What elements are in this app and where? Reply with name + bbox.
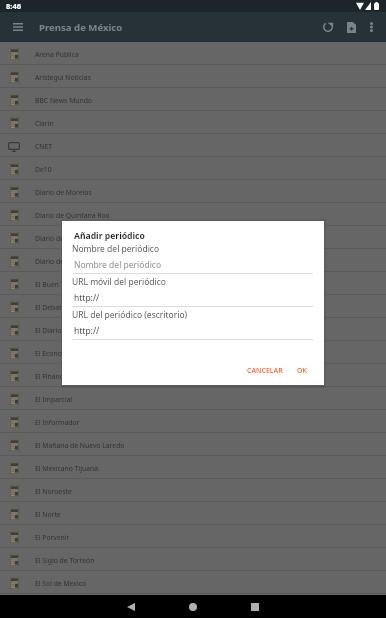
button[interactable]: OK xyxy=(290,362,314,380)
button[interactable]: El Noroeste xyxy=(0,479,386,502)
staticText: URL móvil del periódico xyxy=(72,276,166,288)
staticText: Diario de Xalapa xyxy=(35,234,88,243)
staticText: El Noroeste xyxy=(35,487,72,496)
staticText: Diario de Yucatán xyxy=(35,257,92,266)
button[interactable]: Diario de Xalapa xyxy=(0,226,386,249)
button[interactable]: Recent apps xyxy=(227,595,283,618)
staticText: El Siglo de Torreón xyxy=(35,556,95,565)
button[interactable]: El Imparcial xyxy=(0,387,386,410)
button[interactable]: El Diario xyxy=(0,318,386,341)
button[interactable]: More options xyxy=(359,12,384,42)
staticText: Aristegui Noticias xyxy=(35,73,91,82)
button[interactable]: El Financiero xyxy=(0,364,386,387)
staticText: El Norte xyxy=(35,510,61,519)
staticText: Nombre del periódico xyxy=(72,243,160,255)
staticText: CANCELAR xyxy=(247,366,283,376)
staticText: Arena Pública xyxy=(35,50,79,59)
button[interactable]: El Sol de Mexico xyxy=(0,571,386,594)
button[interactable]: El Informador xyxy=(0,410,386,433)
button[interactable]: De10 xyxy=(0,157,386,180)
button[interactable]: El Debate xyxy=(0,295,386,318)
staticText: El Sol de Mexico xyxy=(35,579,87,588)
button[interactable]: Home xyxy=(165,595,221,618)
staticText: El Mexicano Tijuana xyxy=(35,464,98,473)
button[interactable]: El Mexicano Tijuana xyxy=(0,456,386,479)
staticText: El Porvenir xyxy=(35,533,70,542)
button[interactable]: Clarín xyxy=(0,111,386,134)
staticText: El Financiero xyxy=(35,372,76,381)
staticText: URL del periódico (escritorio) xyxy=(72,309,188,321)
staticText: El Buen Tono xyxy=(35,280,77,289)
button[interactable]: CNET xyxy=(0,134,386,157)
staticText: Nombre del periódico xyxy=(74,259,162,271)
staticText: El Diario xyxy=(35,326,62,335)
button[interactable]: Aristegui Noticias xyxy=(0,65,386,88)
staticText: BBC News Mundo xyxy=(35,96,92,105)
staticText: El Mañana de Nuevo Laredo xyxy=(35,441,125,450)
button[interactable]: Open navigation drawer xyxy=(3,12,32,42)
staticText: El Informador xyxy=(35,418,80,427)
button: Añadir periódico xyxy=(62,221,324,385)
button[interactable]: Back xyxy=(103,595,159,618)
button[interactable]: Diario de Yucatán xyxy=(0,249,386,272)
button[interactable]: Refresh xyxy=(314,12,342,42)
button[interactable]: CANCELAR xyxy=(240,362,290,380)
button[interactable]: El Buen Tono xyxy=(0,272,386,295)
button[interactable]: El Porvenir xyxy=(0,525,386,548)
button[interactable]: El Mañana de Nuevo Laredo xyxy=(0,433,386,456)
button[interactable]: El Siglo de Torreón xyxy=(0,548,386,571)
staticText: Prensa de México xyxy=(39,21,123,34)
staticText: Clarín xyxy=(35,119,54,128)
button[interactable]: El Economista xyxy=(0,341,386,364)
staticText: http:// xyxy=(74,325,100,337)
staticText: El Economista xyxy=(35,349,80,358)
staticText: http:// xyxy=(74,292,100,304)
button[interactable]: Diario de Morelos xyxy=(0,180,386,203)
staticText: El Imparcial xyxy=(35,395,73,404)
button[interactable]: Add newspaper xyxy=(337,12,365,42)
staticText: Añadir periódico xyxy=(74,230,145,242)
staticText: OK xyxy=(297,366,307,376)
staticText: Diario de Quintana Roo xyxy=(35,211,110,220)
button[interactable]: El Norte xyxy=(0,502,386,525)
staticText: CNET xyxy=(35,142,53,151)
button[interactable]: Arena Pública xyxy=(0,42,386,65)
staticText: 8:46 xyxy=(6,1,21,11)
button[interactable]: BBC News Mundo xyxy=(0,88,386,111)
staticText: De10 xyxy=(35,165,52,174)
button[interactable]: Diario de Quintana Roo xyxy=(0,203,386,226)
staticText: Diario de Morelos xyxy=(35,188,92,197)
staticText: El Debate xyxy=(35,303,66,312)
